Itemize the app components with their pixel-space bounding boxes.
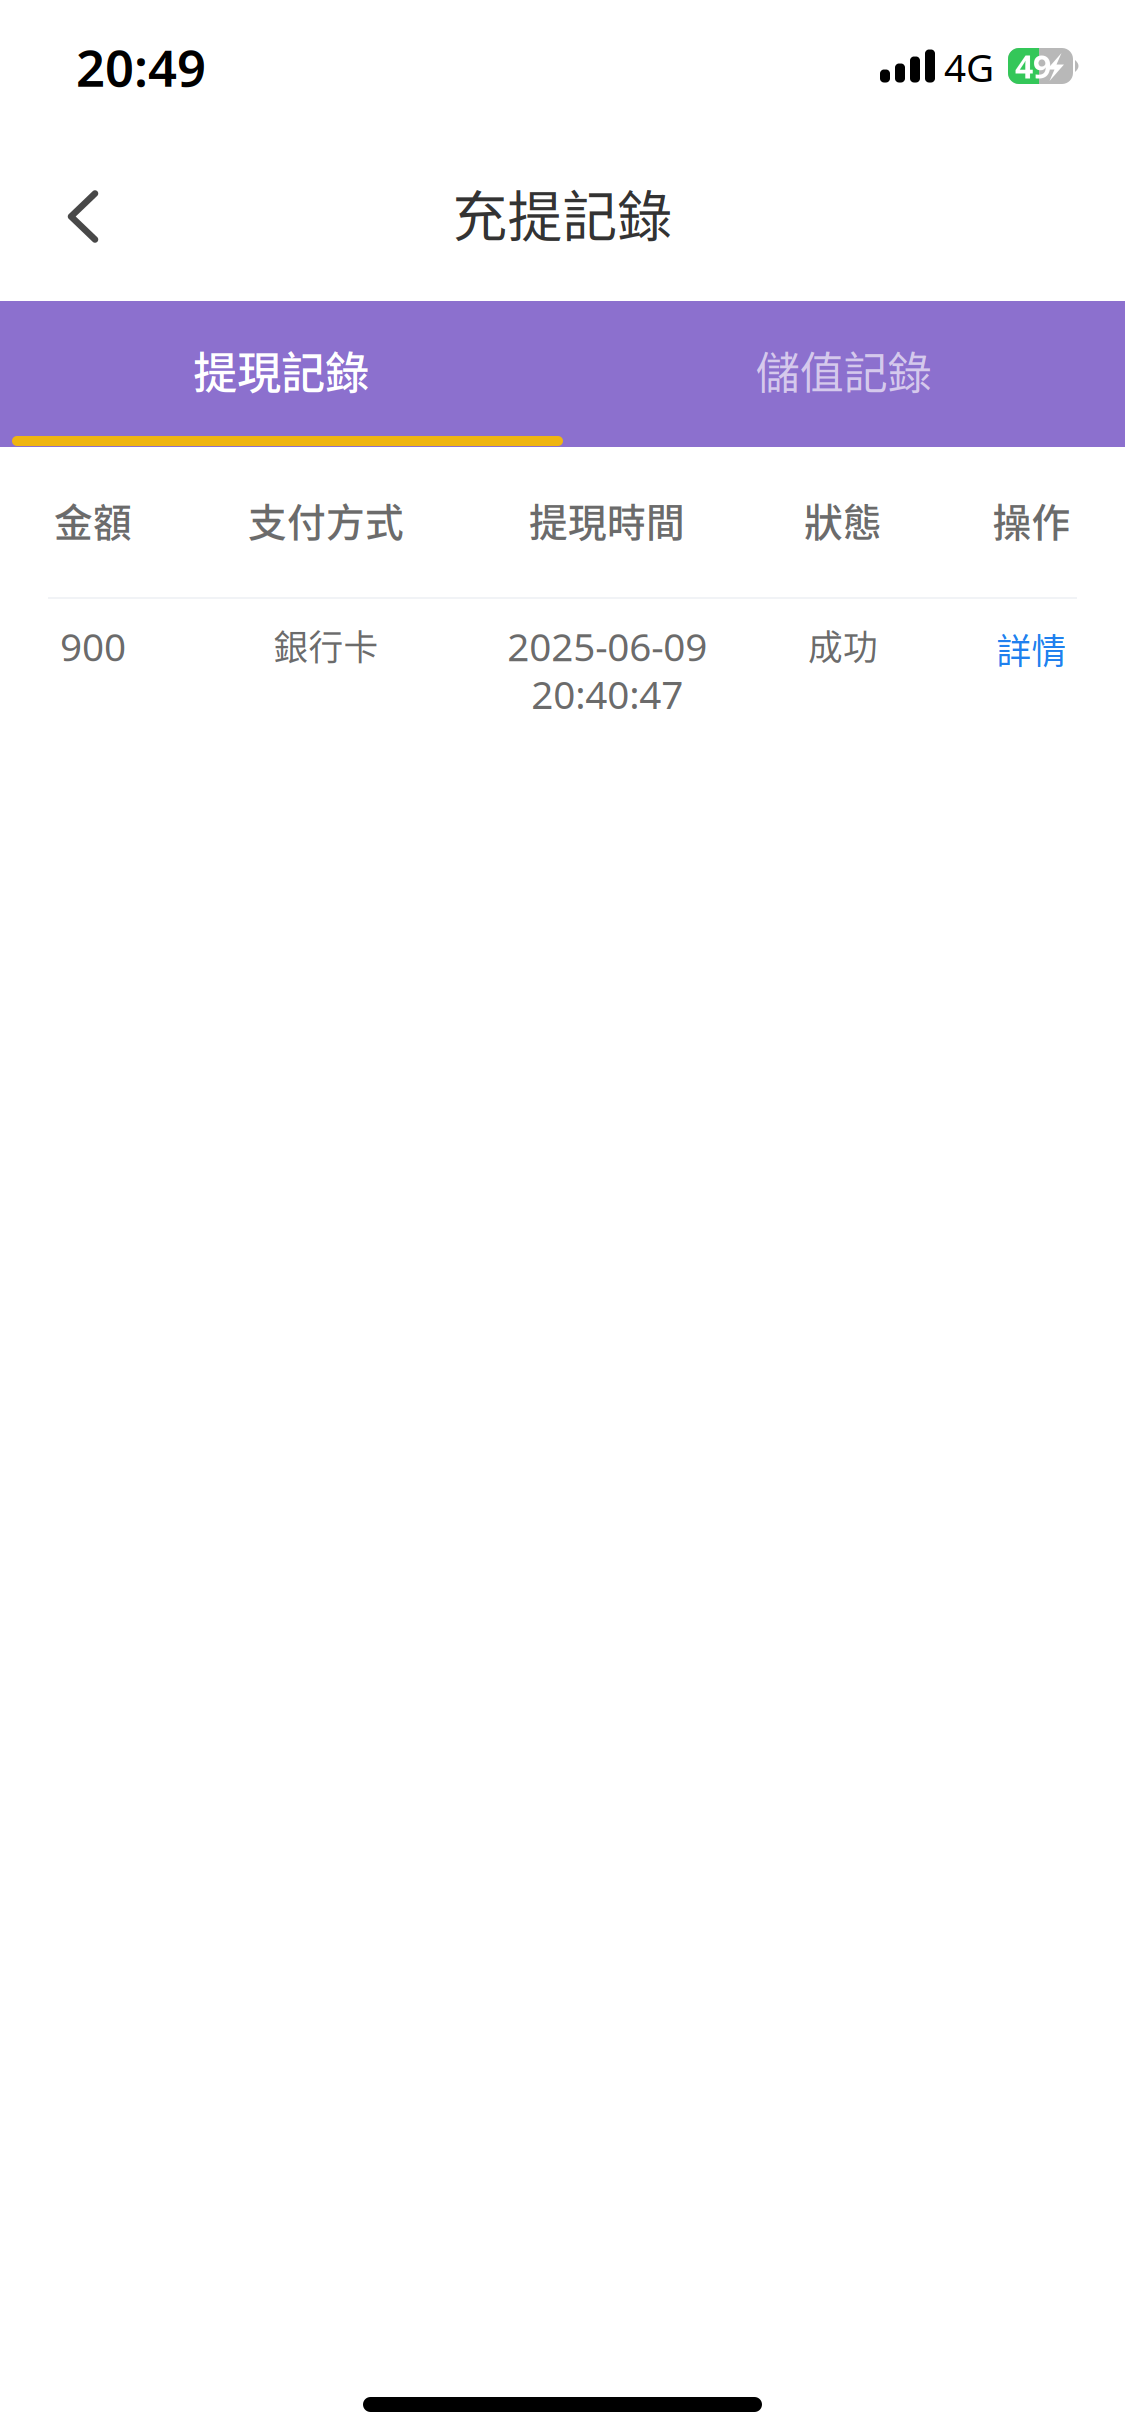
staticText: 提現時間 (529, 492, 685, 548)
staticText: 狀態 (804, 492, 882, 548)
button[interactable]: Back (0, 156, 143, 276)
staticText: 銀行卡 (273, 620, 378, 670)
staticText: 2025-06-09 20:40:47 (507, 620, 707, 720)
staticText: 成功 (808, 620, 878, 670)
staticText: 49 (1015, 44, 1051, 88)
staticText: 提現記錄 (193, 338, 369, 402)
staticText: 20:49 (76, 32, 206, 101)
button[interactable]: 儲值記錄 (562, 301, 1125, 447)
button[interactable]: 提現記錄 (0, 301, 562, 447)
staticText: 操作 (992, 492, 1070, 548)
staticText: 支付方式 (248, 492, 404, 548)
staticText: 充提記錄 (452, 173, 672, 252)
button[interactable]: 詳情 (938, 620, 1125, 678)
staticText: 儲值記錄 (756, 338, 932, 402)
staticText: 金額 (54, 492, 132, 548)
staticText: 4G (944, 41, 994, 93)
staticText: 詳情 (996, 624, 1066, 674)
staticText: 900 (60, 620, 126, 673)
